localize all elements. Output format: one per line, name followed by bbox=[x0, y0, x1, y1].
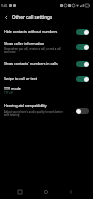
staticText: and more bbox=[4, 50, 16, 54]
button[interactable]: On bbox=[76, 29, 89, 35]
button[interactable]: Off bbox=[76, 108, 89, 114]
staticText: TTY off bbox=[4, 91, 13, 95]
staticText: TTY mode bbox=[4, 86, 21, 91]
staticText: 9:45 bbox=[1, 4, 8, 8]
button[interactable]: Back bbox=[60, 182, 82, 199]
staticText: Show when you call, receive a call, or e… bbox=[4, 47, 61, 51]
button[interactable]: On bbox=[76, 44, 89, 50]
button[interactable]: Navigate up bbox=[0, 11, 12, 23]
button[interactable]: Show contacts' numbers in calls bbox=[0, 58, 93, 72]
staticText: Show contacts' numbers in calls bbox=[4, 61, 58, 66]
button[interactable]: Hearing aid compatibility bbox=[0, 100, 93, 122]
staticText: Adjust your phone's audio quality to wor… bbox=[4, 110, 63, 114]
staticText: Other call settings bbox=[12, 14, 53, 20]
button[interactable]: Home bbox=[35, 182, 57, 199]
button[interactable]: TTY mode bbox=[0, 86, 93, 100]
staticText: Hide contacts without numbers bbox=[4, 29, 58, 34]
button[interactable]: On bbox=[76, 61, 89, 67]
button[interactable]: Show caller information bbox=[0, 38, 93, 58]
staticText: Hearing aid compatibility bbox=[4, 103, 47, 108]
staticText: with hearing bbox=[4, 113, 20, 117]
staticText: Swipe to call or text bbox=[4, 76, 38, 81]
button[interactable]: Recent apps bbox=[9, 182, 31, 199]
button[interactable]: Swipe to call or text bbox=[0, 72, 93, 86]
staticText: Show caller information bbox=[4, 41, 45, 46]
button[interactable]: On bbox=[76, 76, 89, 82]
button[interactable]: Hide contacts without numbers bbox=[0, 24, 93, 38]
